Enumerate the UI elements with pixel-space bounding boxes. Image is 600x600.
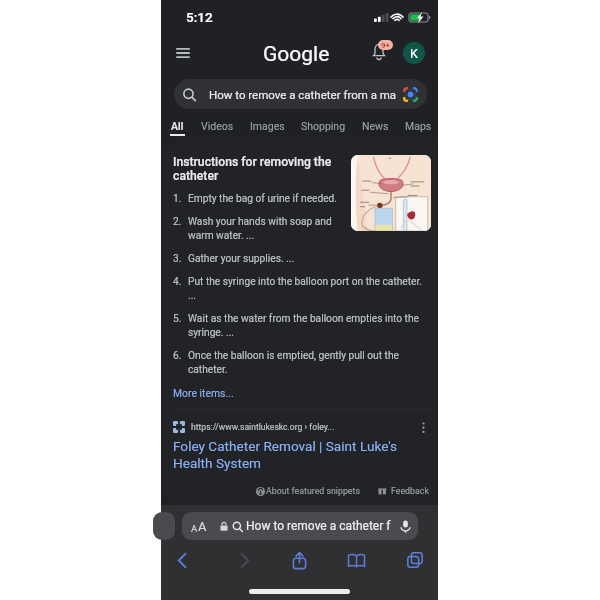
button[interactable]: Images	[250, 120, 285, 132]
staticText: News	[362, 120, 389, 132]
staticText: All	[171, 120, 184, 132]
staticText: 9+	[381, 41, 391, 50]
button[interactable]: Tabs	[398, 543, 432, 577]
staticText: Wash your hands with soap and warm water…	[188, 216, 340, 242]
button[interactable]: Menu	[168, 38, 198, 68]
staticText: Wait as the water from the balloon empti…	[188, 313, 424, 339]
button[interactable]: Maps	[405, 120, 432, 132]
staticText: Instructions for removing the catheter	[173, 155, 337, 183]
button[interactable]: About featured snippets	[256, 486, 360, 496]
button[interactable]: More items...	[173, 387, 234, 399]
staticText: A	[198, 519, 207, 534]
button[interactable]: How to remove a catheter from a ma	[174, 79, 427, 109]
staticText: Empty the bag of urine if needed.	[188, 193, 340, 205]
staticText: Videos	[201, 120, 234, 132]
staticText: 5:12	[186, 9, 213, 25]
staticText: Once the balloon is emptied, gently pull…	[188, 350, 424, 376]
staticText: Maps	[405, 120, 432, 132]
button[interactable]: A	[182, 512, 418, 540]
staticText: Shopping	[301, 120, 346, 132]
staticText: How to remove a catheter f	[246, 519, 396, 533]
staticText: K	[410, 46, 418, 61]
button[interactable]: Notifications	[366, 39, 392, 65]
button[interactable]: Bookmarks	[339, 543, 373, 577]
staticText: How to remove a catheter from a ma	[209, 88, 401, 101]
staticText: Gather your supplies. ...	[188, 253, 424, 265]
button[interactable]: More options	[414, 418, 432, 436]
button[interactable]: News	[362, 120, 389, 132]
button[interactable]: Forward	[227, 543, 261, 577]
staticText: Images	[250, 120, 285, 132]
button[interactable]: Google Lens	[401, 85, 419, 103]
staticText: Put the syringe into the balloon port on…	[188, 276, 424, 302]
staticText: 2.	[173, 216, 188, 228]
staticText: 3.	[173, 253, 188, 265]
staticText: Google	[263, 42, 330, 67]
staticText: Feedback	[391, 486, 429, 496]
button[interactable]: Shopping	[301, 120, 346, 132]
staticText: https://www.saintlukeskc.org › foley...	[191, 422, 414, 432]
button[interactable]: Feedback	[378, 486, 429, 496]
button[interactable]: Account	[403, 42, 425, 64]
staticText: 5.	[173, 313, 188, 325]
staticText: 1.	[173, 193, 188, 205]
button[interactable]: Diagram image	[351, 155, 431, 231]
button[interactable]: Back	[165, 543, 199, 577]
button[interactable]: All	[170, 120, 185, 136]
staticText: A	[191, 523, 198, 534]
button[interactable]: Foley Catheter Removal | Saint Luke's He…	[173, 438, 432, 472]
staticText: About featured snippets	[266, 486, 360, 496]
staticText: 4.	[173, 276, 188, 288]
button[interactable]: Voice search	[396, 517, 414, 535]
button[interactable]: Videos	[201, 120, 234, 132]
staticText: 6.	[173, 350, 188, 362]
button[interactable]: Share	[282, 543, 316, 577]
